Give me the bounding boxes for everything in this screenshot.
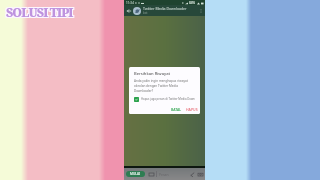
staticText: Anda yakin ingin menghapus riwayat obrol…: [134, 79, 188, 93]
staticText: Twitter Media Downloader: [143, 6, 187, 11]
staticText: SOLUSI TIPI: [7, 3, 74, 19]
staticText: Bersihkan Riwayat: [134, 71, 171, 77]
button[interactable]: HAPUS: [185, 105, 199, 114]
button[interactable]: Back: [126, 8, 132, 14]
staticText: BATAL: [171, 107, 182, 112]
staticText: SOLUSI TIPI: [6, 5, 73, 21]
staticText: Pesan: [159, 172, 169, 177]
staticText: SOLUSI TIPI: [7, 5, 74, 21]
staticText: SOLUSI TIPI: [5, 4, 72, 20]
button[interactable]: Keyboard: [148, 171, 154, 177]
staticText: SOLUSI TIPI: [7, 4, 74, 20]
staticText: SOLUSI TIPI: [6, 4, 73, 20]
staticText: 84%: [189, 1, 196, 5]
staticText: MULAI: [130, 172, 141, 176]
button[interactable]: More options: [198, 8, 204, 14]
staticText: bot: [143, 11, 148, 15]
staticText: Hapus juga pesan di Twitter Media Down: [141, 97, 195, 101]
button[interactable]: Camera: [197, 171, 203, 177]
staticText: SOLUSI TIPI: [5, 5, 72, 21]
staticText: HAPUS: [186, 107, 198, 112]
staticText: 11:34: [126, 1, 134, 5]
button[interactable]: Hapus juga pesan di Twitter Media Down: [129, 96, 200, 102]
staticText: SOLUSI TIPI: [5, 3, 72, 19]
staticText: SOLUSI TIPI: [6, 3, 73, 19]
button[interactable]: Attach: [189, 171, 195, 177]
button[interactable]: MULAI: [126, 171, 145, 177]
button[interactable]: BATAL: [169, 105, 182, 114]
staticText: SOLUSI TIPI: [6, 4, 73, 20]
